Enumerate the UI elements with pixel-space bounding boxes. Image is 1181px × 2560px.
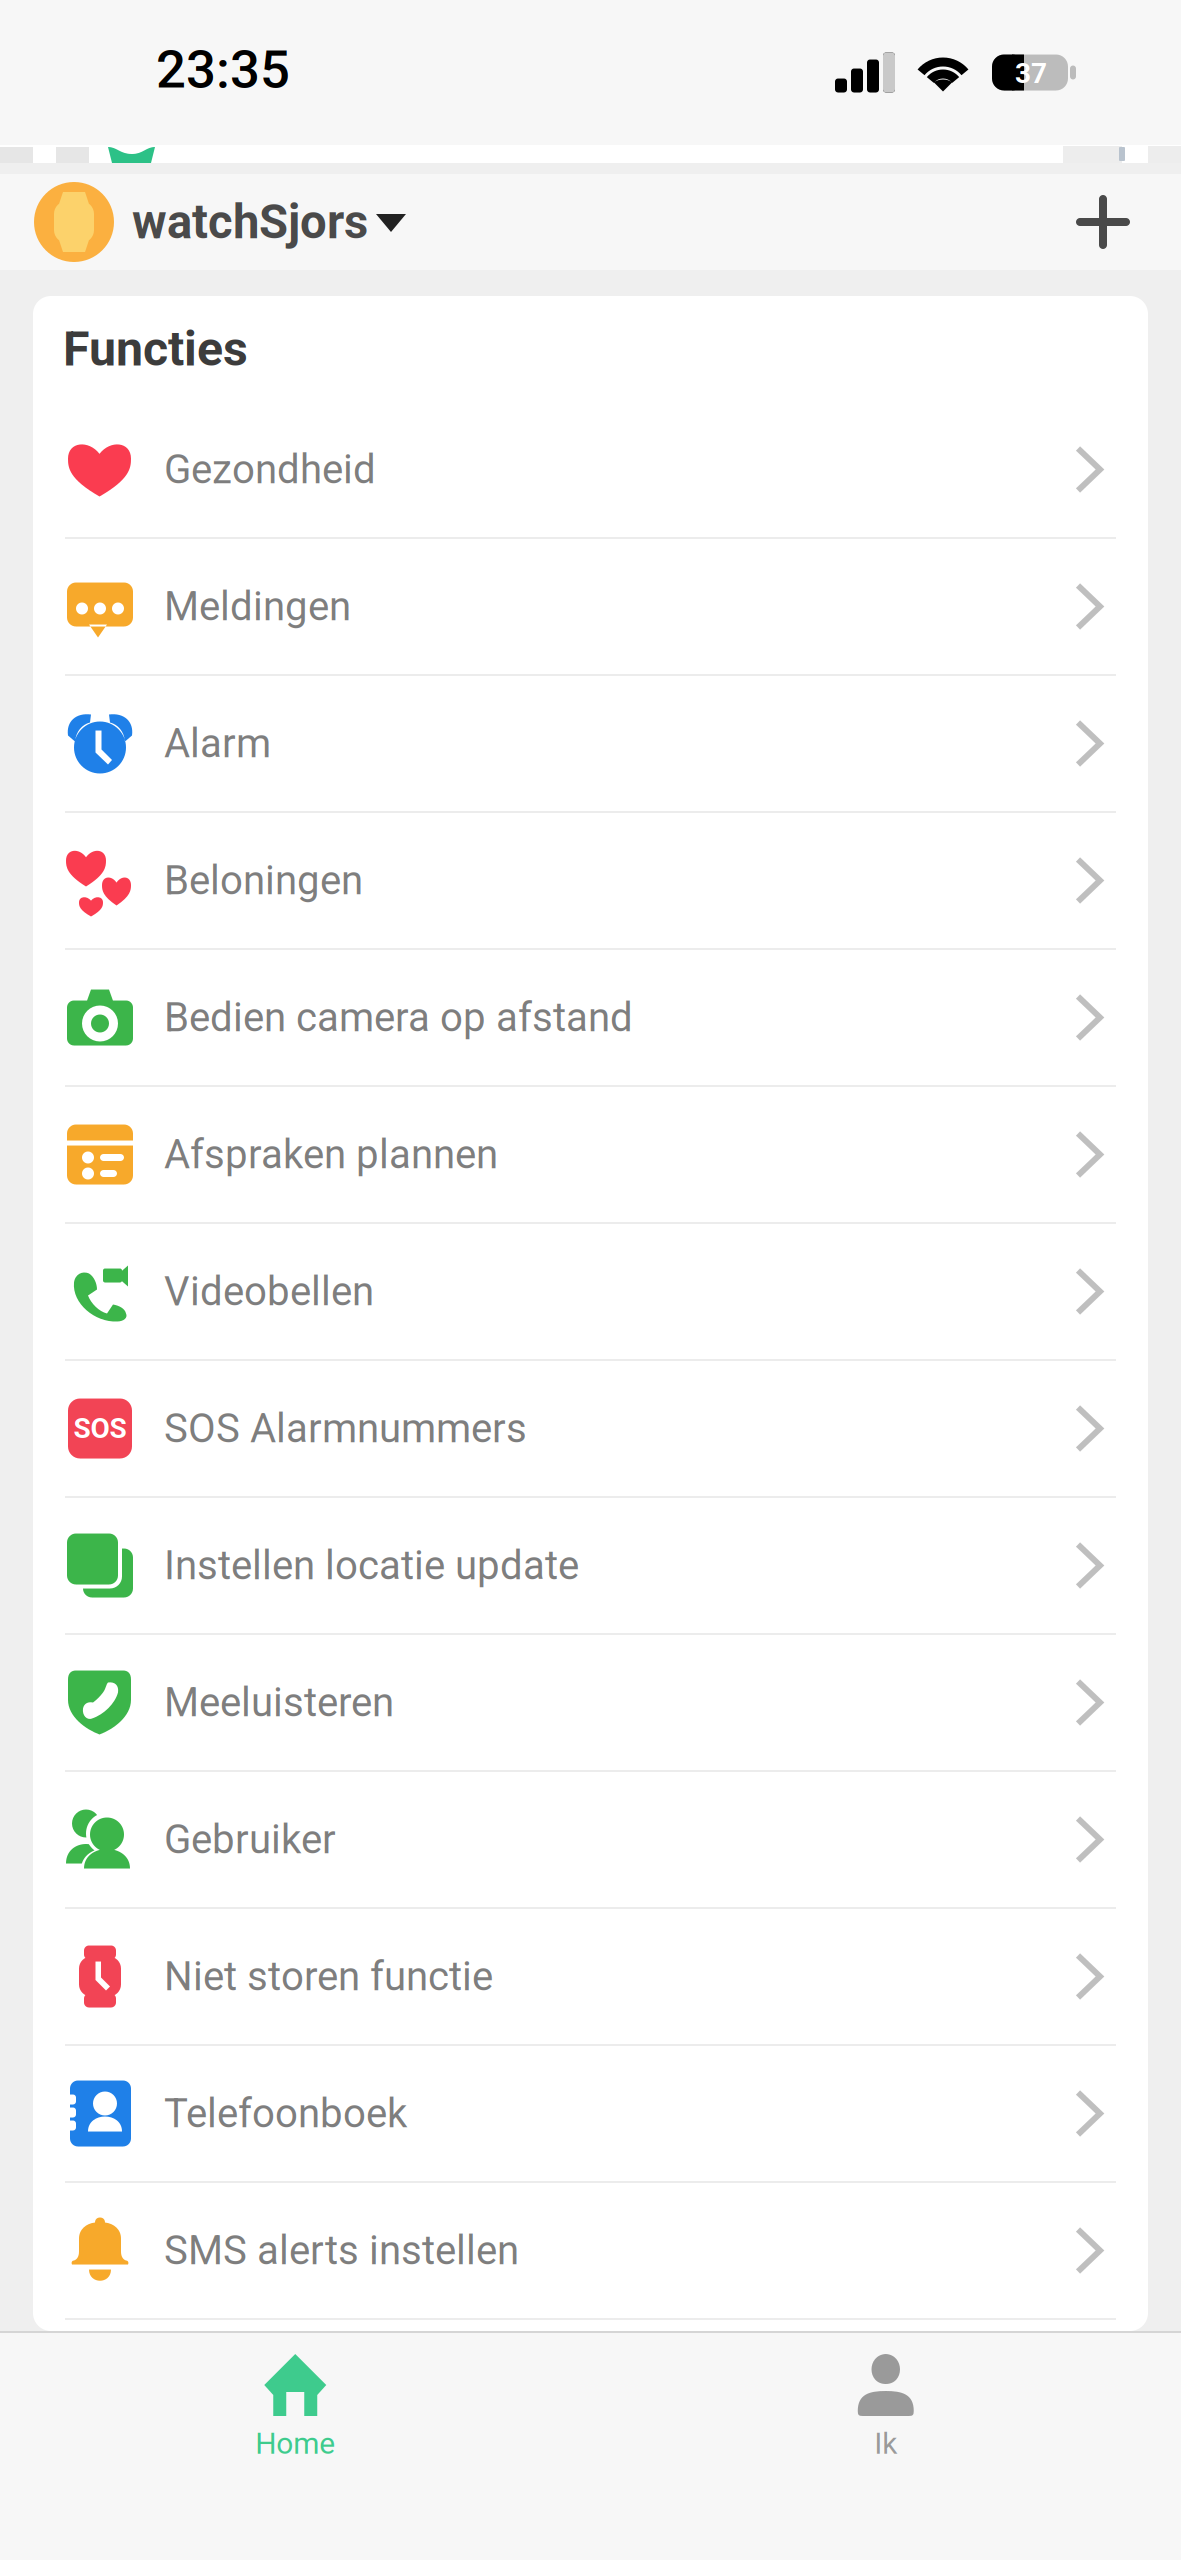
staticText: Instellen locatie update [164,1542,579,1589]
button[interactable]: Telefoonboek [33,2046,1148,2183]
staticText: Beloningen [164,857,363,904]
staticText: Niet storen functie [164,1953,493,2000]
button[interactable]: SOS [33,1361,1148,1498]
button[interactable]: Toevoegen [1055,174,1151,270]
button[interactable]: Gezondheid [33,402,1148,539]
button[interactable]: watchSjors [34,182,414,262]
staticText: watchSjors [132,194,368,250]
staticText: SOS Alarmnummers [164,1405,527,1452]
button[interactable]: Alarm [33,676,1148,813]
staticText: Telefoonboek [164,2090,407,2137]
button[interactable]: Meeluisteren [33,1635,1148,1772]
staticText: Alarm [164,720,271,767]
staticText: Afspraken plannen [164,1131,498,1178]
staticText: SOS [73,1412,126,1445]
button[interactable]: Niet storen functie [33,1909,1148,2046]
staticText: SMS alerts instellen [164,2227,519,2274]
staticText: Gezondheid [164,446,376,493]
button[interactable]: Bedien camera op afstand [33,950,1148,1087]
button[interactable]: Afspraken plannen [33,1087,1148,1224]
staticText: Ik [874,2426,897,2461]
button[interactable]: Beloningen [33,813,1148,950]
staticText: Meeluisteren [164,1679,394,1726]
staticText: Bedien camera op afstand [164,994,633,1041]
button[interactable]: Ik [590,2333,1181,2461]
button[interactable]: SMS alerts instellen [33,2183,1148,2320]
staticText: Gebruiker [164,1816,336,1863]
staticText: Videobellen [164,1268,374,1315]
staticText: Meldingen [164,583,351,630]
button[interactable]: Instellen locatie update [33,1498,1148,1635]
button[interactable]: Meldingen [33,539,1148,676]
staticText: Functies [63,321,248,377]
button[interactable]: Videobellen [33,1224,1148,1361]
staticText: 37 [1015,57,1047,90]
staticText: 23:35 [156,39,290,100]
button[interactable]: Gebruiker [33,1772,1148,1909]
button[interactable]: Home [0,2333,590,2461]
staticText: Home [255,2426,335,2461]
